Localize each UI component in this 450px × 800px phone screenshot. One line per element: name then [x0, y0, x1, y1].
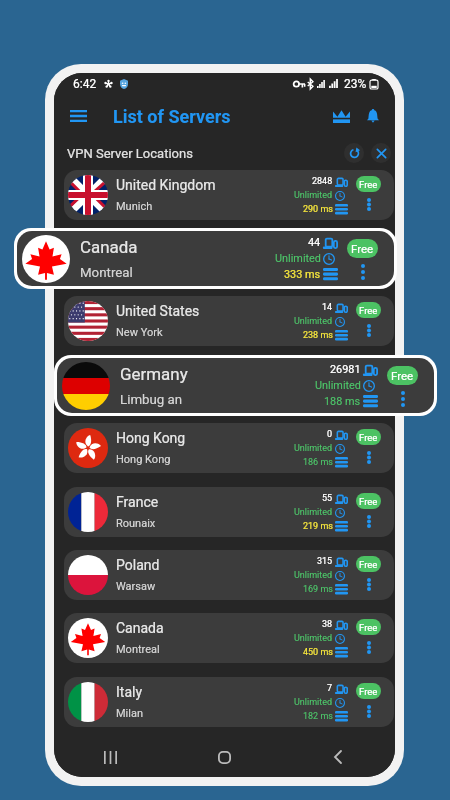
button[interactable]: Free: [356, 493, 381, 509]
staticText: Milan: [116, 707, 144, 720]
button[interactable]: United Kingdom: [64, 170, 394, 220]
button[interactable]: Poland: [64, 550, 394, 600]
staticText: Munich: [116, 200, 153, 213]
staticText: 315: [317, 556, 333, 567]
staticText: 44: [322, 239, 333, 250]
staticText: 169 ms: [303, 584, 333, 595]
staticText: 188 ms: [303, 394, 333, 405]
staticText: 182 ms: [303, 711, 333, 722]
button[interactable]: More options: [362, 260, 376, 274]
button[interactable]: Premium: [325, 100, 357, 132]
staticText: 188 ms: [324, 395, 361, 408]
staticText: Free: [359, 305, 378, 316]
staticText: Free: [359, 622, 378, 633]
staticText: Hong Kong: [116, 453, 171, 466]
staticText: Unlimited: [315, 379, 361, 392]
staticText: 290 ms: [303, 204, 333, 215]
staticText: VPN Server Locations: [67, 146, 193, 161]
button[interactable]: Notifications: [357, 100, 389, 132]
staticText: Canada: [116, 240, 164, 256]
staticText: 14: [322, 302, 333, 313]
staticText: Free: [359, 242, 378, 253]
staticText: 219 ms: [303, 521, 333, 532]
staticText: 7: [327, 683, 333, 694]
button[interactable]: Free: [356, 239, 381, 255]
staticText: 26981: [307, 366, 333, 377]
staticText: Poland: [116, 557, 160, 573]
button[interactable]: Germany: [57, 358, 434, 413]
staticText: 333 ms: [284, 268, 321, 281]
button[interactable]: More options: [362, 387, 376, 401]
staticText: 333 ms: [303, 267, 333, 278]
staticText: Unlimited: [294, 253, 333, 264]
staticText: Free: [359, 686, 378, 697]
button[interactable]: Free: [347, 239, 378, 258]
staticText: List of Servers: [113, 106, 231, 127]
staticText: 55: [322, 493, 333, 504]
button[interactable]: Free: [387, 366, 418, 385]
staticText: Unlimited: [294, 570, 333, 581]
button[interactable]: Free: [356, 429, 381, 445]
button[interactable]: Open navigation menu: [61, 99, 95, 133]
staticText: Unlimited: [294, 697, 333, 708]
staticText: New York: [116, 326, 163, 339]
staticText: Montreal: [116, 263, 160, 276]
button[interactable]: Italy: [64, 677, 394, 727]
button[interactable]: Home: [167, 737, 281, 777]
staticText: Unlimited: [294, 190, 333, 201]
button[interactable]: Hong Kong: [64, 423, 394, 473]
button[interactable]: Recent apps: [54, 737, 167, 777]
staticText: 0: [327, 429, 333, 440]
staticText: Warsaw: [116, 580, 156, 593]
button[interactable]: Free: [356, 556, 381, 572]
staticText: Limbug an: [116, 390, 168, 403]
staticText: Unlimited: [275, 252, 321, 265]
button[interactable]: France: [64, 487, 394, 537]
staticText: Unlimited: [294, 443, 333, 454]
button[interactable]: More options: [394, 390, 411, 407]
staticText: Rounaix: [116, 517, 156, 530]
staticText: Unlimited: [294, 633, 333, 644]
staticText: Free: [391, 369, 414, 382]
button[interactable]: More options: [362, 704, 376, 718]
staticText: 44: [308, 236, 321, 249]
button[interactable]: Free: [356, 302, 381, 318]
staticText: Free: [359, 432, 378, 443]
staticText: Unlimited: [294, 380, 333, 391]
button[interactable]: Canada: [64, 233, 394, 283]
button[interactable]: Back: [281, 737, 395, 777]
staticText: 6:42: [73, 77, 97, 91]
staticText: Hong Kong: [116, 430, 186, 446]
staticText: Germany: [120, 364, 188, 384]
staticText: Free: [359, 496, 378, 507]
staticText: Canada: [80, 237, 138, 257]
staticText: Italy: [116, 684, 143, 700]
button[interactable]: More options: [362, 577, 376, 591]
button[interactable]: Free: [356, 683, 381, 699]
button[interactable]: More options: [362, 640, 376, 654]
button[interactable]: United States: [64, 296, 394, 346]
button[interactable]: Free: [356, 619, 381, 635]
staticText: 450 ms: [303, 647, 333, 658]
button[interactable]: More options: [354, 263, 371, 280]
staticText: 238 ms: [303, 330, 333, 341]
button[interactable]: More options: [362, 514, 376, 528]
staticText: Free: [359, 179, 378, 190]
button[interactable]: More options: [362, 450, 376, 464]
button[interactable]: Canada: [17, 231, 394, 286]
staticText: Free: [359, 369, 378, 380]
button[interactable]: Close: [371, 143, 391, 163]
button[interactable]: Germany: [64, 360, 394, 410]
button[interactable]: Refresh: [344, 143, 364, 163]
button[interactable]: More options: [362, 323, 376, 337]
staticText: 26981: [330, 363, 361, 376]
button[interactable]: Free: [356, 176, 381, 192]
button[interactable]: Canada: [64, 613, 394, 663]
button[interactable]: Free: [356, 366, 381, 382]
staticText: Canada: [116, 620, 164, 636]
button[interactable]: More options: [362, 197, 376, 211]
staticText: France: [116, 494, 159, 510]
staticText: Unlimited: [294, 316, 333, 327]
staticText: Montreal: [116, 643, 160, 656]
staticText: United States: [116, 303, 200, 319]
